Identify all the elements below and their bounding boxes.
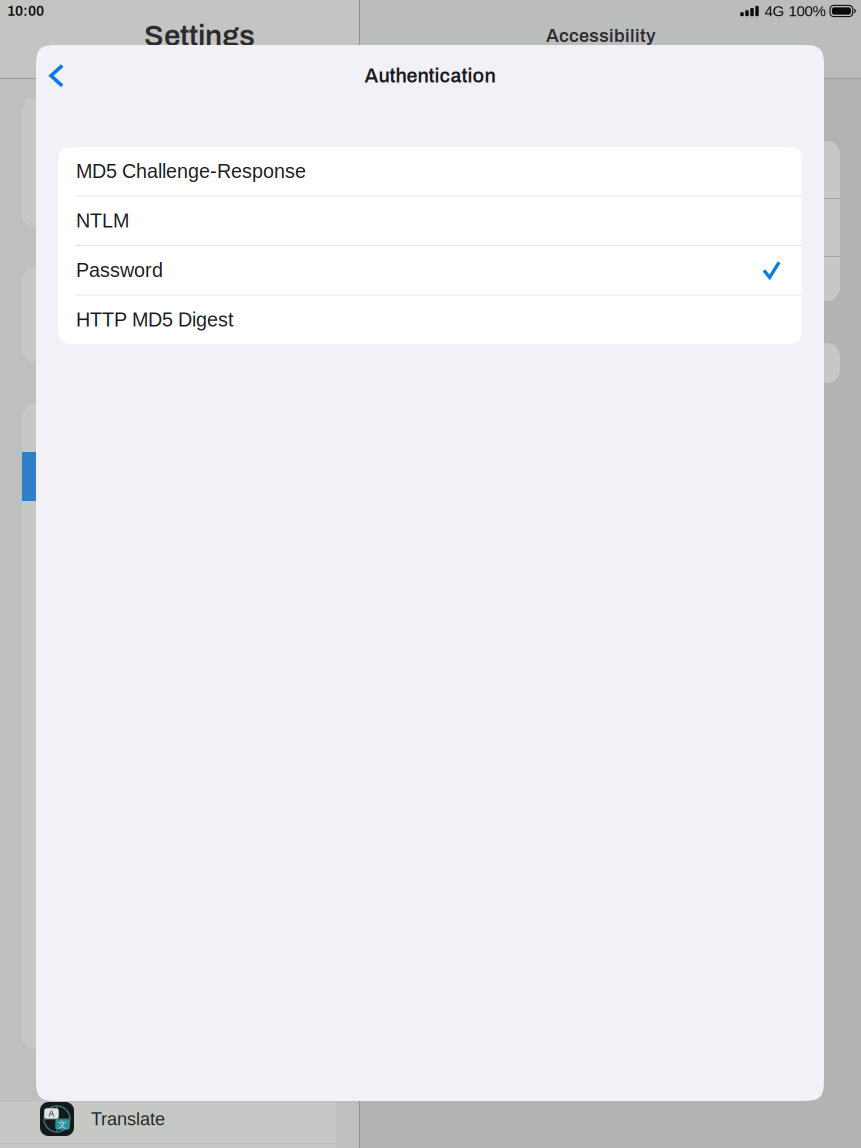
button[interactable]: Back — [45, 54, 91, 98]
staticText: Translate — [91, 1109, 165, 1129]
button[interactable]: MD5 Challenge-Response — [58, 147, 802, 195]
staticText: MD5 Challenge-Response — [76, 160, 306, 182]
staticText: NTLM — [76, 210, 129, 232]
staticText: Settings — [144, 20, 255, 52]
staticText: HTTP MD5 Digest — [76, 309, 233, 331]
button[interactable]: Password — [58, 246, 802, 294]
button[interactable]: NTLM — [58, 196, 802, 245]
staticText: Accessibility — [546, 26, 656, 46]
staticText: Authentication — [364, 65, 495, 87]
staticText: 文 — [58, 1119, 67, 1130]
staticText: A — [48, 1109, 54, 1118]
staticText: 4G 100% — [764, 3, 825, 19]
button[interactable]: HTTP MD5 Digest — [58, 295, 802, 344]
staticText: Password — [76, 259, 163, 281]
staticText: 10:00 — [7, 3, 44, 19]
